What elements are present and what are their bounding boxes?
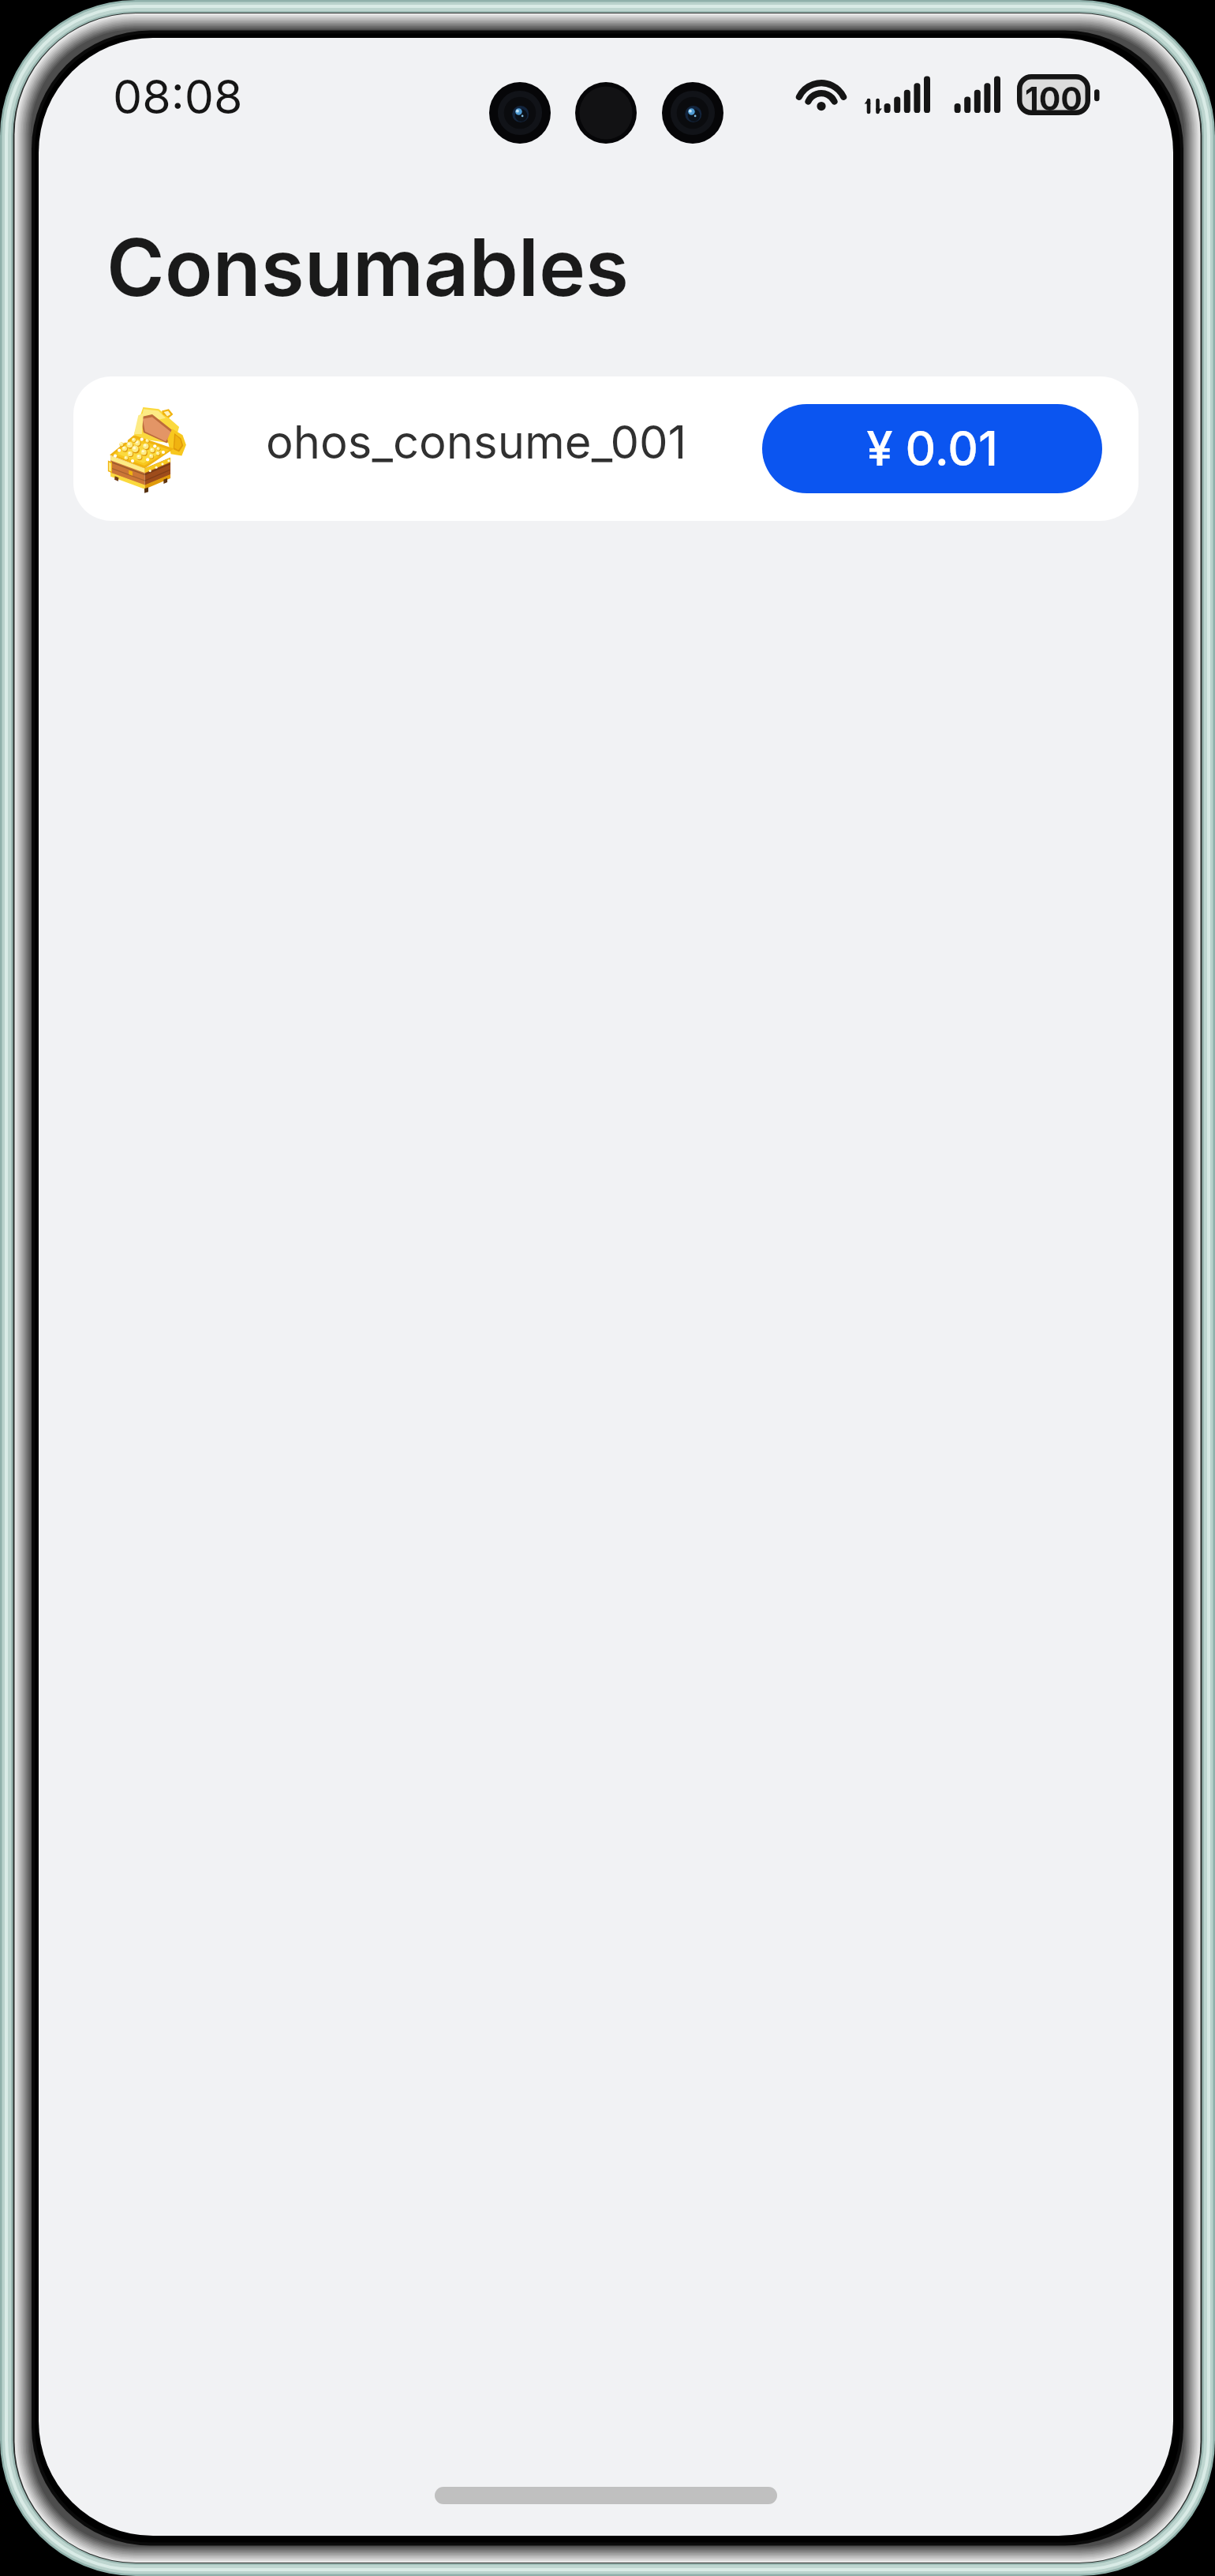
button[interactable]: Treasure chest product icon <box>73 376 1138 521</box>
staticText: 08:08 <box>113 69 243 125</box>
staticText: ohos_consume_001 <box>266 414 687 470</box>
staticText: ¥ 0.01 <box>866 420 998 477</box>
other: Treasure chest product icon <box>105 404 192 494</box>
staticText: Consumables <box>107 219 630 315</box>
staticText: 100 <box>1025 79 1082 118</box>
button[interactable]: ¥ 0.01 <box>762 404 1102 493</box>
